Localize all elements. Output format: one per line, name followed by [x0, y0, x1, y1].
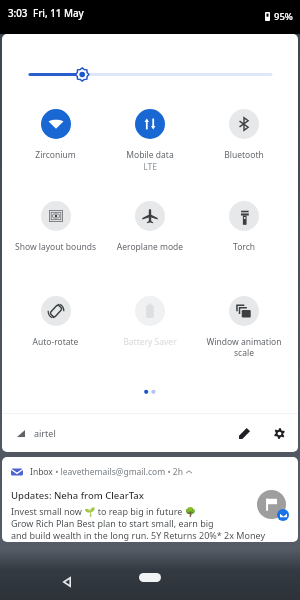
button[interactable]: Aeroplane mode	[103, 201, 197, 253]
staticText: Invest small now 🌱 to reap big in future…	[11, 505, 196, 517]
button[interactable]: Back	[55, 570, 79, 594]
staticText: Battery Saver	[106, 336, 194, 348]
staticText: Updates: Neha from ClearTax	[11, 489, 144, 502]
staticText: Torch	[200, 241, 288, 253]
button[interactable]: Zirconium	[8, 109, 103, 161]
button[interactable]: Home	[139, 573, 161, 582]
staticText: Mobile data	[106, 149, 194, 161]
staticText: Grow Rich Plan Best plan to start small,…	[11, 517, 214, 529]
button[interactable]: Window animation scale	[197, 296, 291, 358]
staticText: Aeroplane mode	[106, 241, 194, 253]
button[interactable]: Settings	[268, 422, 290, 444]
button[interactable]: Torch	[197, 201, 291, 253]
staticText: airtel	[34, 427, 56, 439]
staticText: • leavethemails@gmail.com • 2h	[53, 466, 186, 478]
button[interactable]: Battery Saver	[103, 296, 197, 348]
button[interactable]: Bluetooth	[197, 109, 291, 161]
staticText: Fri, 11 May	[33, 7, 84, 20]
staticText: 95%	[274, 10, 293, 23]
staticText: LTE	[103, 161, 197, 173]
staticText: Bluetooth	[200, 149, 288, 161]
button[interactable]: Mobile data	[103, 109, 197, 173]
button[interactable]: Auto-rotate	[8, 296, 103, 348]
staticText: Inbox	[30, 466, 53, 478]
staticText: Auto-rotate	[11, 336, 100, 348]
button[interactable]: Show layout bounds	[8, 201, 103, 253]
staticText: and build wealth in the long run. 5Y Ret…	[11, 529, 265, 541]
staticText: 3:03	[8, 7, 28, 20]
staticText: Show layout bounds	[11, 241, 100, 253]
staticText: Window animation scale	[200, 336, 288, 358]
staticText: Zirconium	[11, 149, 100, 161]
button[interactable]: Edit tiles	[233, 422, 255, 444]
